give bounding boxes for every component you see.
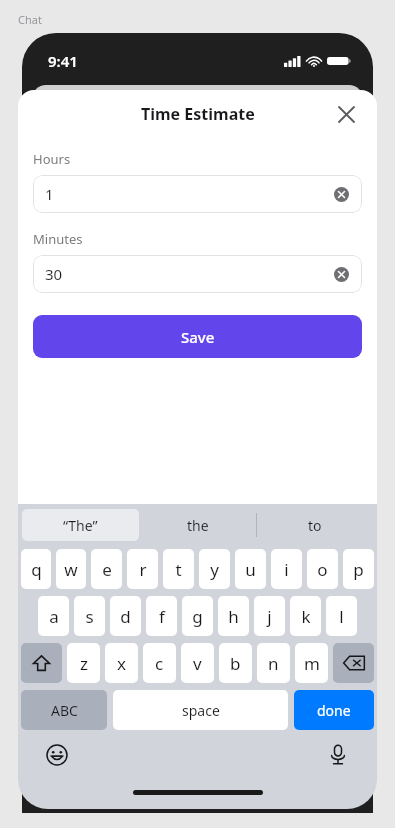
- button[interactable]: t: [163, 549, 194, 589]
- button[interactable]: Close: [331, 99, 361, 129]
- button[interactable]: q: [21, 549, 51, 589]
- staticText: f: [159, 605, 165, 628]
- staticText: l: [339, 605, 344, 628]
- button[interactable]: m: [295, 643, 328, 683]
- button[interactable]: 30: [33, 255, 362, 293]
- button[interactable]: done: [294, 690, 374, 730]
- staticText: to: [308, 516, 322, 535]
- staticText: t: [175, 558, 182, 581]
- button[interactable]: o: [307, 549, 338, 589]
- button[interactable]: r: [127, 549, 158, 589]
- staticText: 9:41: [48, 51, 78, 71]
- staticText: m: [304, 652, 320, 675]
- button[interactable]: j: [254, 596, 285, 636]
- button[interactable]: p: [343, 549, 374, 589]
- staticText: a: [49, 605, 59, 628]
- staticText: i: [284, 558, 289, 581]
- button[interactable]: i: [271, 549, 302, 589]
- button[interactable]: to: [256, 504, 373, 546]
- button[interactable]: k: [290, 596, 321, 636]
- staticText: r: [139, 558, 147, 581]
- staticText: q: [31, 558, 42, 581]
- staticText: w: [64, 558, 78, 581]
- button[interactable]: e: [91, 549, 122, 589]
- button[interactable]: x: [105, 643, 138, 683]
- staticText: 1: [45, 184, 54, 204]
- button[interactable]: Emoji: [42, 740, 72, 770]
- staticText: x: [117, 652, 126, 675]
- staticText: n: [268, 652, 279, 675]
- staticText: ABC: [51, 701, 78, 720]
- staticText: d: [120, 605, 131, 628]
- staticText: g: [192, 605, 203, 628]
- staticText: c: [155, 652, 164, 675]
- staticText: “The”: [63, 516, 98, 535]
- button[interactable]: y: [199, 549, 230, 589]
- staticText: s: [85, 605, 94, 628]
- button[interactable]: v: [181, 643, 214, 683]
- button[interactable]: d: [110, 596, 141, 636]
- button[interactable]: z: [67, 643, 100, 683]
- button[interactable]: Shift: [21, 643, 62, 683]
- staticText: 30: [45, 264, 63, 284]
- button[interactable]: f: [146, 596, 177, 636]
- staticText: z: [80, 652, 88, 675]
- button[interactable]: g: [182, 596, 213, 636]
- button[interactable]: l: [326, 596, 357, 636]
- button[interactable]: Clear Hours: [330, 183, 352, 205]
- button[interactable]: 1: [33, 175, 362, 213]
- button[interactable]: space: [113, 690, 288, 730]
- button[interactable]: n: [257, 643, 290, 683]
- button[interactable]: “The”: [22, 509, 139, 541]
- button[interactable]: c: [143, 643, 176, 683]
- button[interactable]: Backspace: [333, 643, 374, 683]
- button[interactable]: a: [38, 596, 69, 636]
- staticText: Hours: [33, 150, 71, 168]
- button[interactable]: u: [235, 549, 266, 589]
- staticText: space: [182, 701, 220, 720]
- button[interactable]: Dictation: [323, 740, 353, 770]
- staticText: v: [193, 652, 202, 675]
- staticText: Chat: [18, 12, 42, 27]
- staticText: done: [317, 701, 351, 720]
- staticText: Minutes: [33, 230, 83, 248]
- button[interactable]: s: [74, 596, 105, 636]
- button[interactable]: the: [139, 504, 256, 546]
- button[interactable]: w: [56, 549, 86, 589]
- staticText: k: [301, 605, 311, 628]
- staticText: h: [228, 605, 239, 628]
- staticText: u: [245, 558, 256, 581]
- staticText: o: [317, 558, 328, 581]
- button[interactable]: ABC: [21, 690, 107, 730]
- button[interactable]: b: [219, 643, 252, 683]
- button[interactable]: Save: [33, 315, 362, 358]
- staticText: y: [210, 558, 219, 581]
- staticText: Save: [181, 327, 215, 347]
- staticText: e: [102, 558, 112, 581]
- staticText: b: [230, 652, 241, 675]
- staticText: the: [187, 516, 209, 535]
- staticText: p: [353, 558, 364, 581]
- button[interactable]: h: [218, 596, 249, 636]
- button[interactable]: Clear Minutes: [330, 263, 352, 285]
- staticText: Time Estimate: [141, 103, 255, 125]
- staticText: j: [267, 605, 272, 628]
